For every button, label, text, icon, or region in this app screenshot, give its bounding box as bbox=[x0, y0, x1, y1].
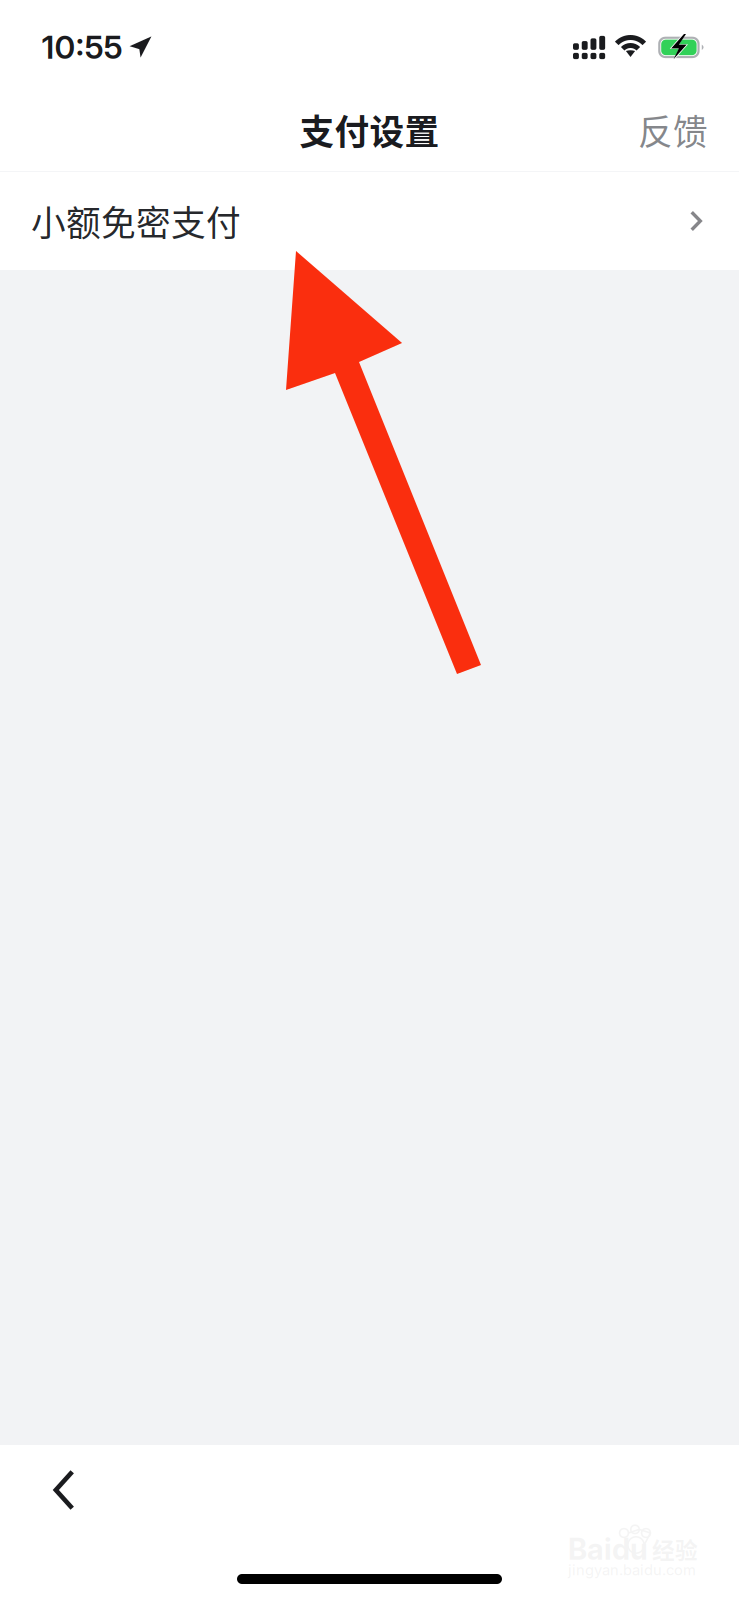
button[interactable]: 小额免密支付 bbox=[0, 172, 739, 270]
staticText: jingyan.baidu.com bbox=[568, 1561, 696, 1579]
staticText: 经验 bbox=[652, 1533, 698, 1565]
button[interactable]: 反馈 bbox=[618, 95, 728, 165]
staticText: 10:55 bbox=[41, 28, 122, 66]
staticText: 反馈 bbox=[638, 105, 708, 155]
staticText: Baidu bbox=[568, 1531, 648, 1567]
staticText: 小额免密支付 bbox=[31, 196, 241, 246]
button[interactable]: Back bbox=[24, 1450, 104, 1530]
staticText: 支付设置 bbox=[299, 105, 439, 155]
